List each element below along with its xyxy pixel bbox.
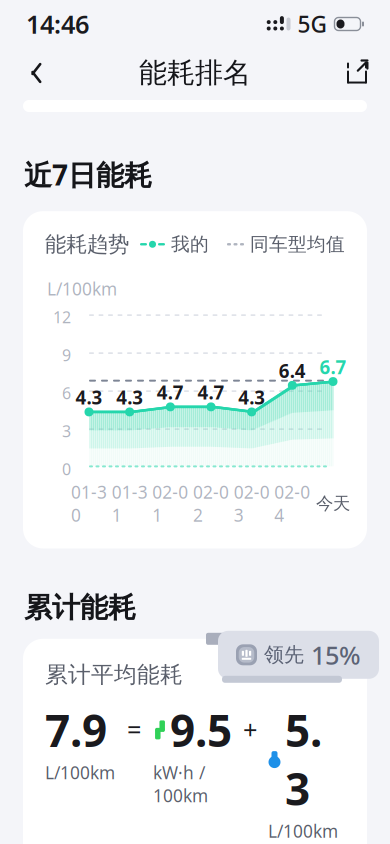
staticText: 3 (62, 420, 71, 442)
staticText: 14:46 (26, 7, 89, 41)
staticText: 01-30 (71, 480, 107, 526)
staticText: 02-04 (274, 480, 310, 526)
staticText: 我的 (171, 233, 209, 256)
staticText: 4.3 (75, 385, 102, 410)
staticText: 02-03 (234, 480, 270, 526)
staticText: 6.7 (319, 354, 346, 379)
staticText: 领先 (264, 642, 304, 667)
staticText: 累计平均能耗 (45, 661, 183, 689)
staticText: 累计能耗 (24, 590, 136, 625)
staticText: 同车型均值 (250, 233, 345, 256)
button[interactable]: 返回 (11, 51, 55, 95)
staticText: 01-31 (112, 480, 148, 526)
staticText: 6 (62, 382, 71, 404)
staticText: L/100km (45, 761, 115, 784)
button[interactable]: 分享 (335, 51, 379, 95)
staticText: 5.3 (285, 701, 322, 818)
staticText: 4.7 (157, 380, 184, 405)
staticText: L/100km (47, 277, 117, 300)
staticText: 7.9 (45, 701, 107, 759)
staticText: 今天 (316, 493, 350, 514)
staticText: + (243, 713, 257, 746)
staticText: 能耗排名 (139, 56, 251, 90)
staticText: 4.7 (197, 380, 224, 405)
staticText: 9 (62, 344, 71, 366)
staticText: = (127, 713, 141, 746)
staticText: kW·h /100km (153, 761, 208, 807)
staticText: 6.4 (279, 358, 306, 383)
staticText: 近7日能耗 (24, 156, 152, 193)
staticText: 9.5 (170, 701, 232, 759)
staticText: L/100km (268, 819, 338, 842)
staticText: 5G (297, 9, 326, 39)
staticText: 15% (311, 638, 361, 672)
staticText: 0 (62, 458, 71, 480)
staticText: 12 (53, 306, 71, 328)
staticText: 4.3 (116, 385, 143, 410)
staticText: 4.3 (238, 385, 265, 410)
staticText: 02-02 (193, 480, 229, 526)
staticText: 02-01 (152, 480, 188, 526)
staticText: 能耗趋势 (45, 231, 129, 257)
